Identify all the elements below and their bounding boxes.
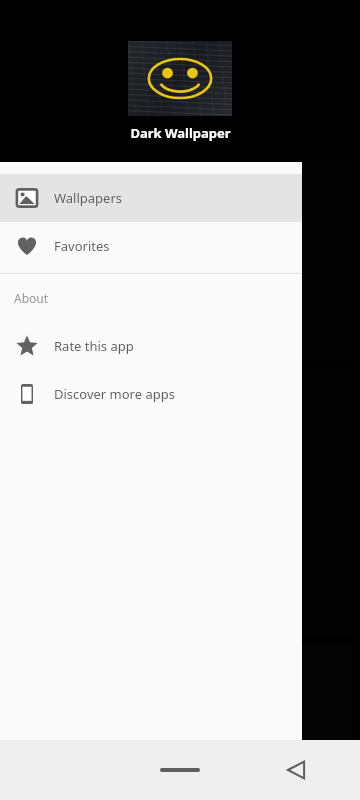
staticText: Rate this app [54, 337, 134, 355]
button[interactable] [128, 41, 232, 116]
button[interactable] [182, 90, 352, 360]
button[interactable]: Favorites [0, 222, 302, 270]
button[interactable]: Home [140, 748, 220, 792]
button[interactable]: Wallpapers [0, 174, 302, 222]
button[interactable] [182, 642, 352, 782]
button[interactable]: Rate this app [0, 322, 302, 370]
button[interactable]: Discover more apps [0, 370, 302, 418]
staticText: Favorites [54, 237, 110, 255]
staticText: Dark Wallpaper [130, 124, 231, 142]
staticText: Discover more apps [54, 385, 175, 403]
staticText: About [14, 290, 49, 306]
button[interactable]: Back [274, 748, 318, 792]
staticText: Wallpapers [54, 189, 123, 207]
button[interactable] [182, 366, 352, 636]
